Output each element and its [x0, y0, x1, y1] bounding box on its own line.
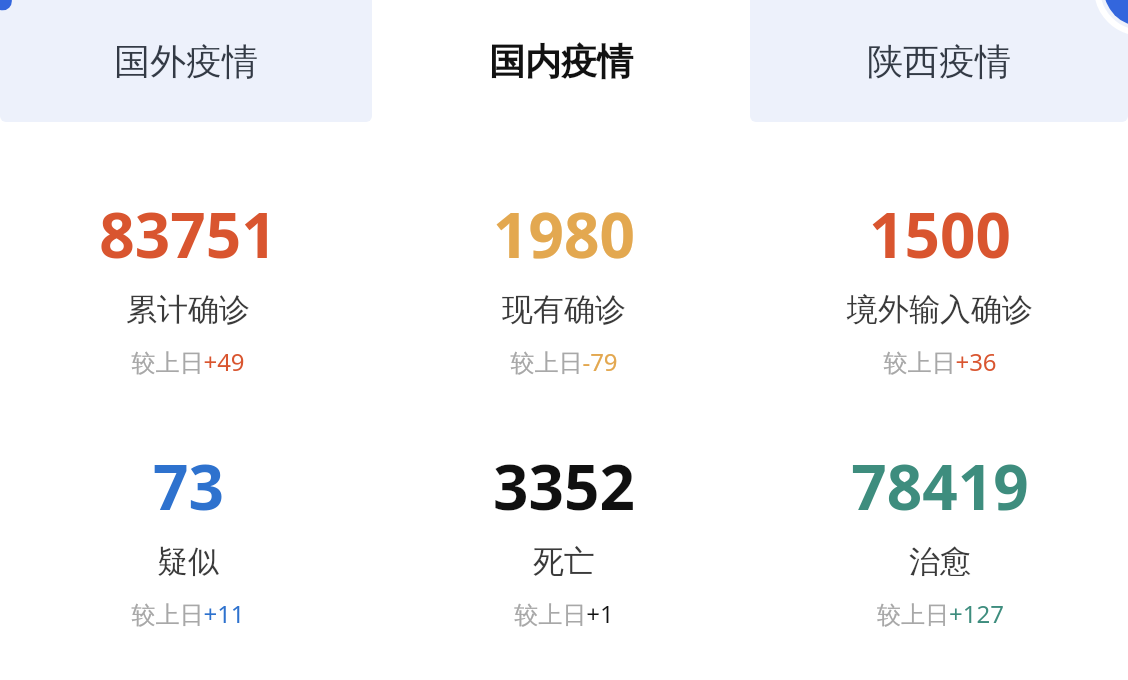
- staticText: 现有确诊: [502, 290, 626, 329]
- staticText: 累计确诊: [126, 290, 250, 329]
- staticText: 较上日+49: [131, 345, 245, 378]
- button[interactable]: 3352: [376, 444, 752, 630]
- button[interactable]: 国外疫情: [0, 0, 372, 122]
- staticText: 较上日+36: [883, 345, 997, 378]
- staticText: 较上日+11: [131, 597, 245, 630]
- staticText: 1500: [869, 192, 1011, 276]
- staticText: 73: [153, 444, 224, 528]
- staticText: 较上日+1: [514, 597, 614, 630]
- staticText: 78419: [851, 444, 1029, 528]
- staticText: 3352: [493, 444, 635, 528]
- staticText: 境外输入确诊: [847, 290, 1033, 329]
- button[interactable]: 1980: [376, 192, 752, 378]
- staticText: 较上日-79: [510, 345, 618, 378]
- button[interactable]: 78419: [752, 444, 1128, 630]
- button[interactable]: 73: [0, 444, 376, 630]
- button[interactable]: 1500: [752, 192, 1128, 378]
- button[interactable]: 国内疫情: [372, 0, 750, 122]
- staticText: 83751: [99, 192, 277, 276]
- button[interactable]: 83751: [0, 192, 376, 378]
- staticText: 较上日+127: [877, 597, 1004, 630]
- staticText: 国外疫情: [114, 39, 258, 84]
- staticText: 1980: [493, 192, 635, 276]
- staticText: 陕西疫情: [867, 39, 1011, 84]
- staticText: 国内疫情: [489, 39, 633, 84]
- button[interactable]: 陕西疫情: [750, 0, 1128, 122]
- staticText: 死亡: [533, 542, 595, 581]
- staticText: 疑似: [157, 542, 219, 581]
- other: Badge: [1068, 0, 1128, 60]
- staticText: 治愈: [909, 542, 971, 581]
